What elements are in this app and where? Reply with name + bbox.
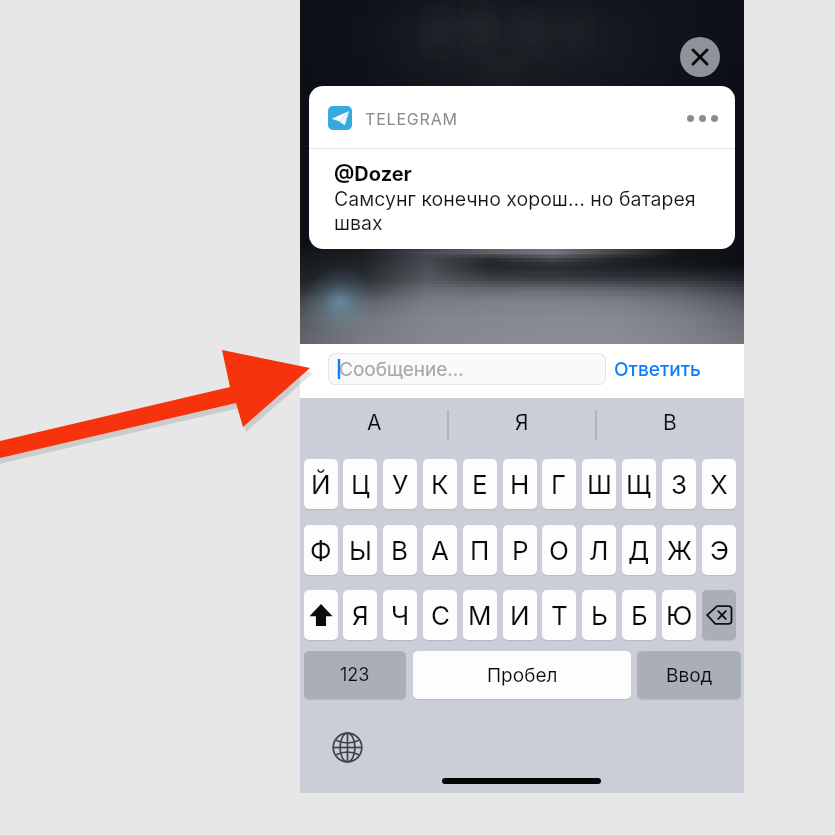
staticText: Ж [667,535,692,566]
staticText: Х [710,469,728,500]
button[interactable]: А [423,525,457,575]
staticText: Е [472,469,488,500]
button[interactable]: О [542,525,576,575]
staticText: Пробел [487,664,558,687]
staticText: Ш [587,469,612,500]
button[interactable]: 123 [304,651,406,699]
button[interactable]: More options [687,115,718,122]
button[interactable]: Close [680,37,720,77]
staticText: В [663,410,677,435]
staticText: К [431,469,449,500]
button[interactable]: А [300,398,448,446]
staticText: Я [352,600,369,631]
button[interactable]: Д [622,525,656,575]
button[interactable]: Т [542,590,576,640]
staticText: Й [311,469,331,500]
staticText: Б [631,600,648,631]
button[interactable]: Б [622,590,656,640]
button[interactable]: Ю [662,590,696,640]
button[interactable]: Backspace [702,590,736,640]
button[interactable]: Г [542,459,576,509]
staticText: Сообщение... [339,358,464,381]
button[interactable]: Ш [582,459,616,509]
staticText: И [510,600,530,631]
button[interactable]: Пробел [413,651,631,699]
button[interactable]: Р [503,525,537,575]
button[interactable]: С [423,590,457,640]
staticText: TELEGRAM [365,109,458,128]
staticText: Н [510,469,530,500]
button[interactable]: Ы [343,525,377,575]
staticText: Ь [591,600,608,631]
staticText: Ответить [614,358,701,381]
button[interactable]: Ц [343,459,377,509]
button[interactable]: Ответить [614,358,701,381]
button[interactable]: И [503,590,537,640]
staticText: А [367,410,382,435]
button[interactable]: Х [702,459,736,509]
staticText: 123 [340,664,370,686]
button[interactable]: Ь [582,590,616,640]
staticText: Самсунг конечно хорош... но батарея швах [334,187,726,235]
staticText: О [549,535,569,566]
button[interactable]: П [463,525,497,575]
button[interactable]: Э [702,525,736,575]
button[interactable]: Н [503,459,537,509]
staticText: М [468,600,492,631]
button[interactable]: Change keyboard [331,731,363,763]
staticText: Ф [310,535,332,566]
button[interactable]: Е [463,459,497,509]
staticText: З [671,469,688,500]
staticText: Т [551,600,568,631]
staticText: Р [512,535,529,566]
staticText: С [431,600,450,631]
button[interactable]: Сообщение... [328,353,606,385]
button[interactable]: Ч [383,590,417,640]
button[interactable]: Ввод [637,651,741,699]
staticText: А [431,535,449,566]
staticText: Э [710,535,729,566]
button[interactable]: Щ [622,459,656,509]
staticText: П [470,535,490,566]
staticText: Ввод [666,664,713,687]
button[interactable]: М [463,590,497,640]
staticText: Щ [626,469,652,500]
button[interactable]: Й [304,459,338,509]
button[interactable]: Я [343,590,377,640]
button[interactable]: У [383,459,417,509]
button[interactable]: К [423,459,457,509]
staticText: Ч [391,600,410,631]
button[interactable]: Ф [304,525,338,575]
button[interactable]: З [662,459,696,509]
button[interactable]: В [596,398,744,446]
button[interactable]: Я [448,398,596,446]
staticText: Г [551,469,567,500]
button[interactable]: Ж [662,525,696,575]
staticText: Ю [666,600,693,631]
staticText: Ы [349,535,372,566]
button[interactable]: TELEGRAM [309,86,735,249]
button[interactable]: В [383,525,417,575]
staticText: Я [515,410,529,435]
button[interactable]: Shift [304,590,338,640]
staticText: Ц [351,469,370,500]
staticText: Л [589,535,609,566]
staticText: В [391,535,409,566]
staticText: У [392,469,409,500]
staticText: @Dozer [334,162,412,186]
staticText: Д [628,535,650,566]
button[interactable]: Л [582,525,616,575]
